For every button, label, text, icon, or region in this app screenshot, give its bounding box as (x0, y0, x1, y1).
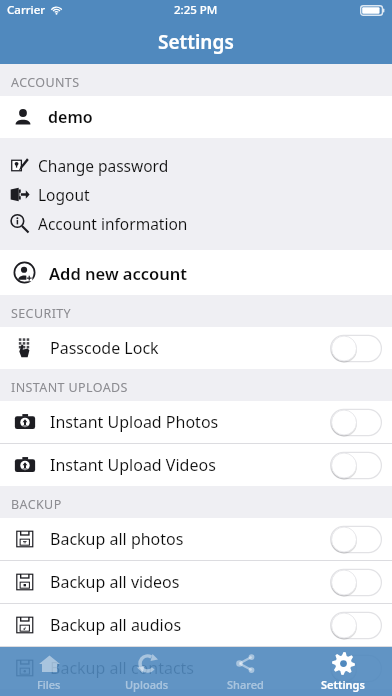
button[interactable]: demo (0, 96, 392, 138)
staticText: Backup all videos (50, 571, 180, 593)
button[interactable]: Passcode Lock (0, 327, 392, 369)
button[interactable]: Logout (0, 180, 392, 209)
staticText: Backup all photos (50, 528, 184, 550)
button[interactable]: Shared (196, 647, 294, 696)
staticText: ACCOUNTS (11, 74, 80, 91)
button[interactable]: Uploads (98, 647, 196, 696)
button[interactable]: Settings (294, 647, 392, 696)
button[interactable]: Backup all audios (0, 604, 392, 646)
button[interactable]: Add new account (0, 250, 392, 295)
staticText: Shared (227, 677, 264, 692)
button[interactable]: Backup all photos (0, 518, 392, 560)
staticText: Backup all audios (50, 614, 182, 636)
staticText: SECURITY (11, 305, 72, 322)
staticText: demo (48, 106, 93, 128)
staticText: Instant Upload Videos (50, 454, 216, 476)
button[interactable]: Instant Upload Videos (0, 444, 392, 486)
staticText: Logout (38, 184, 90, 205)
button[interactable]: Files (0, 647, 98, 696)
button[interactable]: Backup all contacts toggle (330, 653, 382, 684)
button[interactable]: Backup all videos (0, 561, 392, 603)
staticText: Uploads (125, 677, 169, 692)
staticText: Settings (321, 677, 365, 692)
button[interactable]: Instant Upload Photos (0, 401, 392, 443)
staticText: Files (37, 677, 61, 692)
staticText: INSTANT UPLOADS (11, 379, 128, 396)
staticText: Backup all contacts (50, 657, 195, 679)
staticText: Change password (38, 155, 169, 176)
staticText: Add new account (49, 262, 188, 284)
staticText: BACKUP (11, 496, 62, 513)
staticText: Account information (38, 213, 188, 234)
button[interactable]: Instant Upload Photos toggle (330, 407, 382, 438)
staticText: Settings (158, 29, 234, 55)
staticText: Carrier (7, 2, 46, 18)
button[interactable]: Backup all audios toggle (330, 610, 382, 641)
button[interactable]: Instant Upload Videos toggle (330, 450, 382, 481)
staticText: Instant Upload Photos (50, 411, 219, 433)
button[interactable]: Change password (0, 151, 392, 180)
button[interactable]: Backup all videos toggle (330, 567, 382, 598)
button[interactable]: Account information (0, 209, 392, 238)
button[interactable]: Backup all photos toggle (330, 524, 382, 555)
staticText: 2:25 PM (174, 2, 218, 18)
button[interactable]: Backup all contacts (0, 647, 392, 689)
button[interactable]: Passcode Lock toggle (330, 333, 382, 364)
staticText: Passcode Lock (50, 337, 159, 359)
